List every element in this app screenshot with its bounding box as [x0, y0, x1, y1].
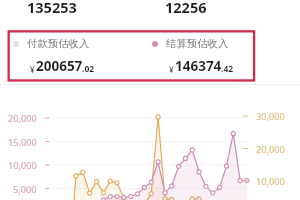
staticText: ¥	[30, 64, 35, 75]
staticText: 10,000	[8, 159, 37, 172]
staticText: 30,000	[256, 110, 285, 123]
button[interactable]: 付款预估收入	[13, 37, 123, 77]
staticText: 146374	[175, 57, 222, 75]
staticText: .02	[82, 63, 95, 75]
staticText: 5,000	[13, 183, 37, 196]
staticText: 12256	[165, 0, 207, 17]
staticText: 200657	[36, 57, 83, 75]
staticText: 15,000	[8, 136, 37, 149]
staticText: 10,000	[256, 175, 285, 188]
staticText: 结算预估收入	[166, 37, 229, 50]
staticText: 20,000	[256, 143, 285, 156]
button[interactable]: 结算预估收入	[152, 37, 262, 77]
staticText: 135253	[27, 0, 77, 17]
staticText: ¥	[169, 64, 174, 75]
staticText: 付款预估收入	[27, 37, 90, 50]
staticText: .42	[221, 63, 234, 75]
staticText: 20,000	[8, 112, 37, 125]
